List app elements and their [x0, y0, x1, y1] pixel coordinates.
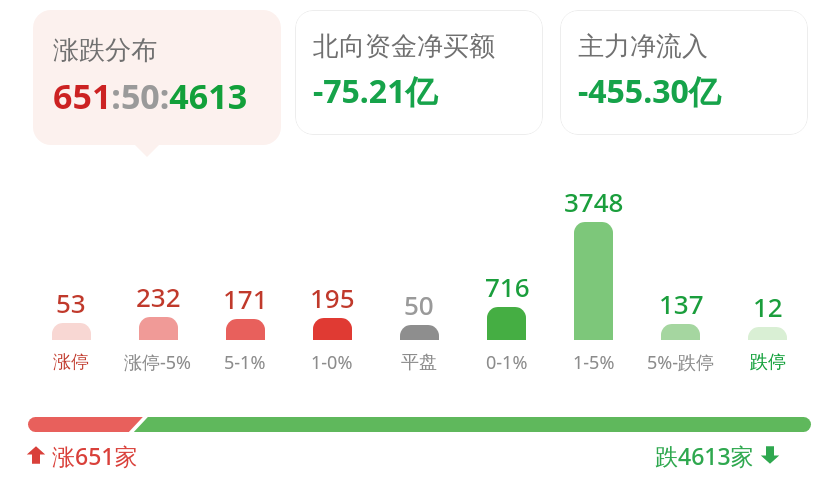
- staticText: 1-0%: [311, 350, 353, 375]
- staticText: 716: [485, 269, 530, 304]
- staticText: 50: [404, 287, 434, 322]
- button[interactable]: 涨停: [23, 347, 119, 377]
- staticText: 涨停-5%: [124, 350, 192, 375]
- button[interactable]: 涨跌分布: [33, 10, 281, 158]
- staticText: 跌4613家: [655, 440, 754, 471]
- staticText: 651:50:4613: [53, 73, 248, 119]
- button[interactable]: 涨停-5%: [110, 347, 206, 377]
- staticText: 195: [310, 280, 355, 315]
- staticText: 12: [753, 289, 783, 324]
- button[interactable]: 跌4613家: [655, 438, 780, 472]
- staticText: 平盘: [401, 351, 437, 374]
- staticText: 涨651家: [52, 440, 138, 471]
- button[interactable]: 主力净流入: [560, 10, 808, 135]
- staticText: 137: [659, 286, 704, 321]
- other: Up: [26, 445, 46, 465]
- staticText: -75.21亿: [313, 69, 438, 113]
- staticText: 5-1%: [224, 350, 266, 375]
- staticText: 5%-跌停: [647, 350, 715, 375]
- button[interactable]: 5%-跌停: [633, 347, 729, 377]
- button[interactable]: 北向资金净买额: [295, 10, 543, 135]
- button[interactable]: 1-5%: [546, 347, 642, 377]
- staticText: 171: [223, 281, 268, 316]
- button[interactable]: 平盘: [371, 347, 467, 377]
- staticText: 3748: [564, 184, 624, 219]
- staticText: 0-1%: [486, 350, 528, 375]
- staticText: 53: [56, 285, 86, 320]
- other: Down: [760, 445, 780, 465]
- button[interactable]: Up: [26, 438, 138, 472]
- staticText: 涨跌分布: [53, 34, 157, 67]
- staticText: 主力净流入: [578, 30, 708, 63]
- button[interactable]: 0-1%: [459, 347, 555, 377]
- staticText: 1-5%: [573, 350, 615, 375]
- staticText: 跌停: [750, 351, 786, 374]
- button[interactable]: 跌停: [720, 347, 816, 377]
- staticText: 232: [136, 279, 181, 314]
- staticText: 北向资金净买额: [313, 30, 495, 63]
- staticText: 涨停: [53, 351, 89, 374]
- staticText: -455.30亿: [578, 69, 721, 113]
- button[interactable]: 1-0%: [284, 347, 380, 377]
- button[interactable]: 5-1%: [197, 347, 293, 377]
